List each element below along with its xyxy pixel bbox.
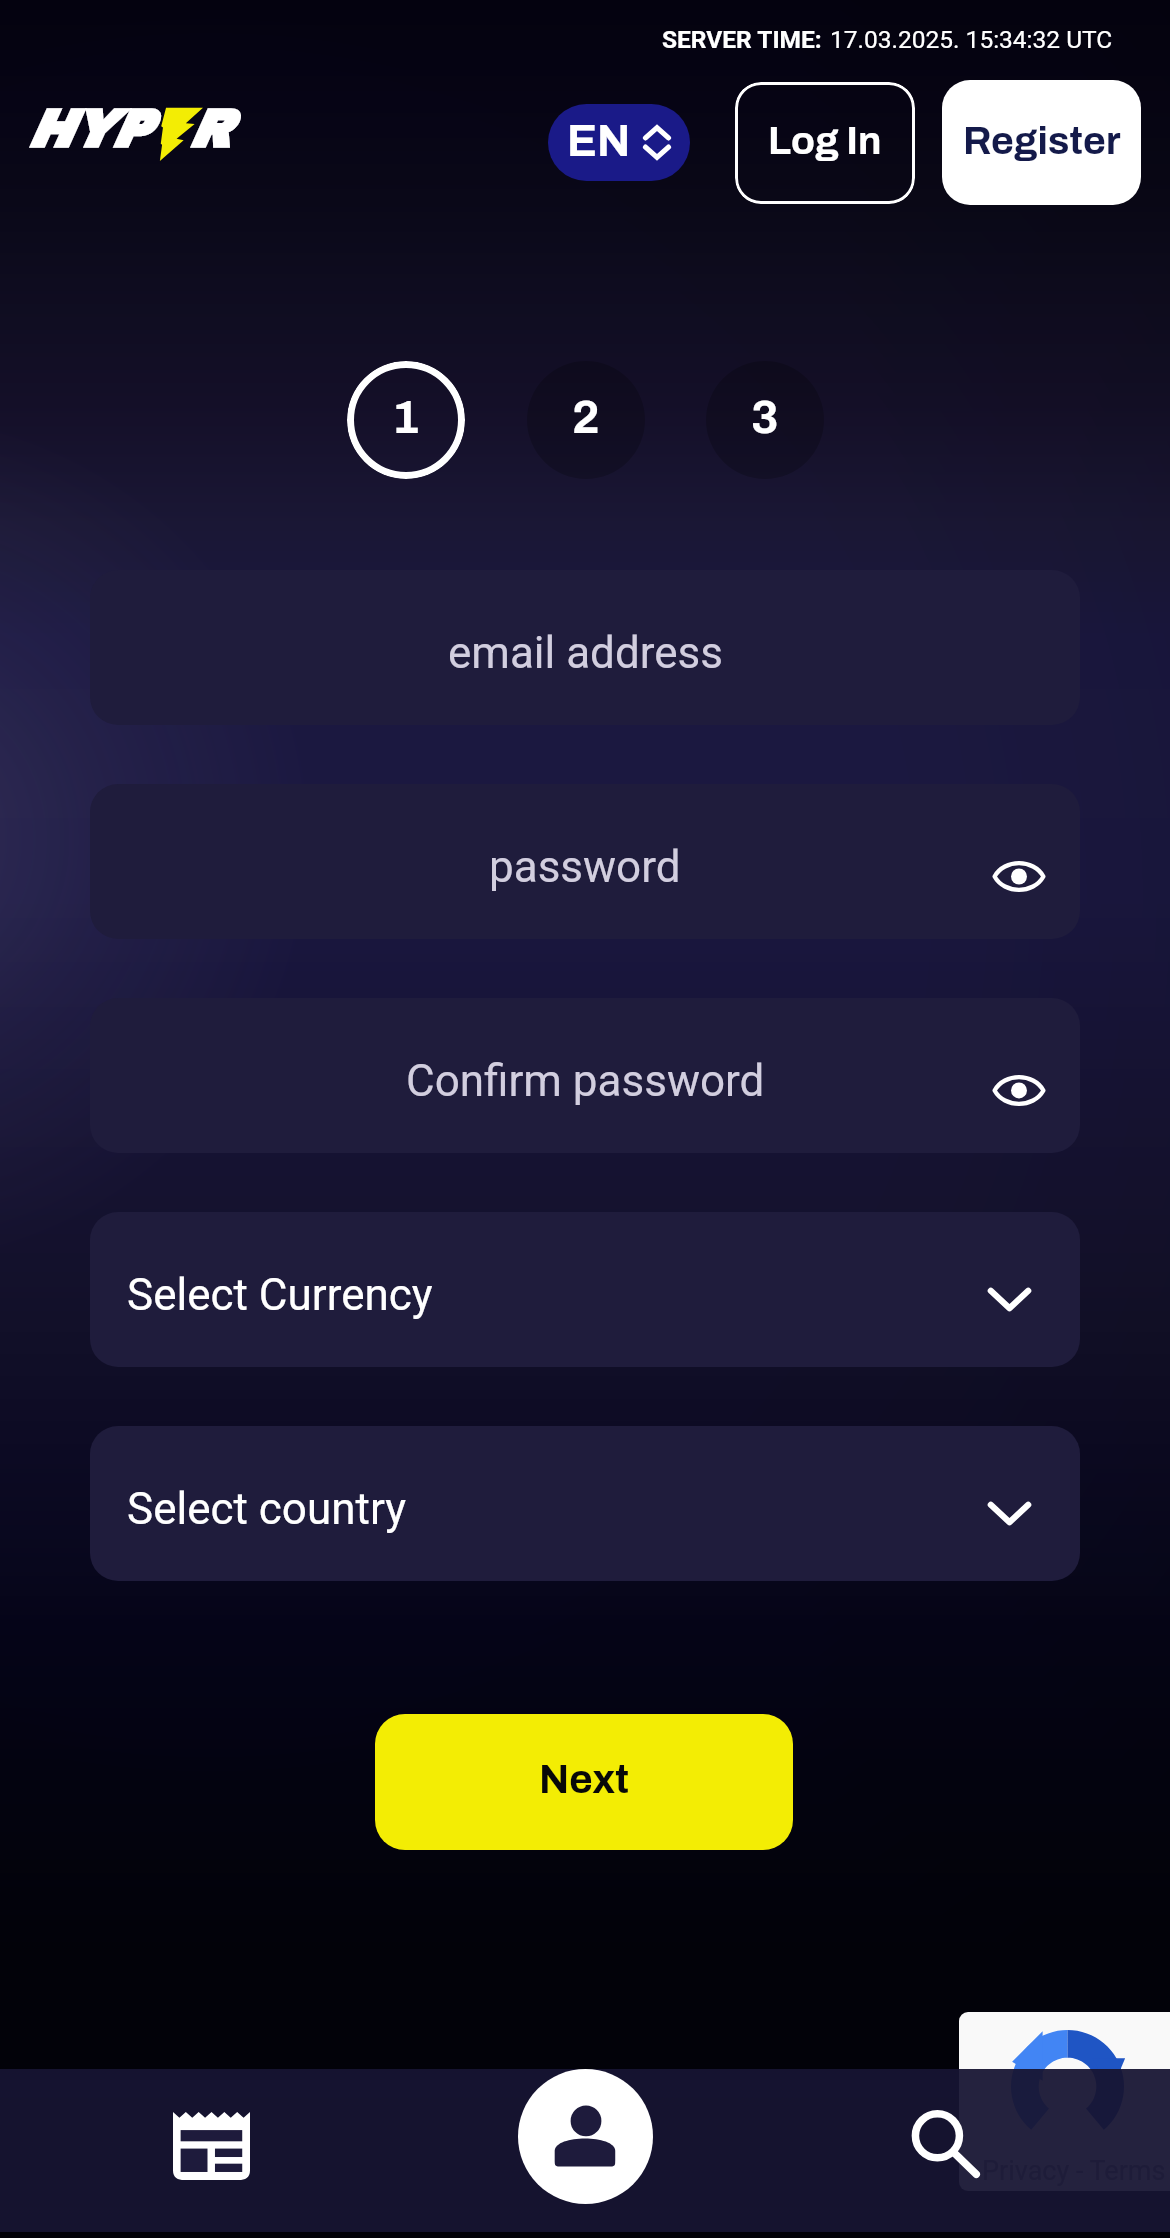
button[interactable]: 1 [347, 361, 465, 479]
button[interactable]: Register [942, 80, 1141, 205]
staticText: 3 [751, 393, 779, 443]
button[interactable]: Profile [518, 2069, 653, 2204]
button[interactable]: Confirm password [90, 998, 1080, 1153]
staticText: Register [963, 120, 1121, 162]
staticText: Confirm password [406, 1055, 765, 1107]
staticText: 1 [392, 393, 420, 443]
staticText: Select country [127, 1483, 407, 1535]
staticText: Next [539, 1758, 629, 1802]
staticText: Log In [768, 120, 882, 162]
button[interactable]: Search [889, 2087, 1011, 2209]
staticText: 17.03.2025. 15:34:32 UTC [830, 25, 1113, 54]
staticText: EN [567, 117, 631, 165]
button[interactable]: 2 [527, 361, 645, 479]
button[interactable]: Select country [90, 1426, 1080, 1581]
button[interactable]: email address [90, 570, 1080, 725]
button[interactable]: 3 [706, 361, 824, 479]
staticText: HYP [27, 101, 149, 158]
staticText: SERVER TIME: [662, 25, 822, 54]
button[interactable]: password [90, 784, 1080, 939]
button[interactable]: Bets [150, 2079, 271, 2195]
button[interactable]: Log In [735, 82, 915, 204]
staticText: email address [448, 627, 723, 679]
button[interactable]: Show password [981, 1052, 1057, 1128]
staticText: R [188, 101, 229, 158]
staticText: password [489, 841, 681, 893]
staticText: Select Currency [127, 1269, 433, 1321]
button[interactable]: Next [375, 1714, 793, 1850]
button[interactable]: Change language [548, 104, 690, 181]
button[interactable]: Show password [981, 838, 1057, 914]
button[interactable]: Select Currency [90, 1212, 1080, 1367]
staticText: 2 [572, 393, 600, 443]
